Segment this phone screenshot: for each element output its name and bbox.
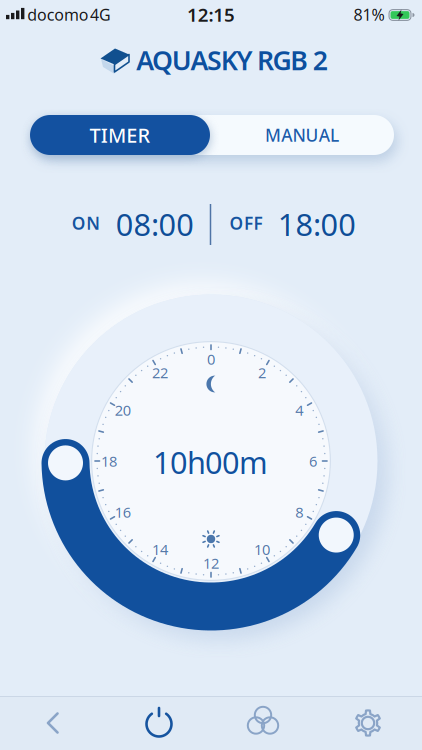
- staticText: 81%: [353, 4, 384, 25]
- staticText: TIMER: [90, 122, 150, 148]
- button[interactable]: MANUAL: [210, 115, 394, 155]
- staticText: 0: [207, 349, 215, 369]
- staticText: 6: [309, 451, 317, 471]
- staticText: 16: [115, 502, 131, 522]
- staticText: 4: [295, 400, 303, 420]
- staticText: 10h00m: [153, 442, 268, 482]
- staticText: 20: [115, 400, 131, 420]
- staticText: OFF: [229, 211, 262, 234]
- staticText: 2: [258, 363, 266, 382]
- button[interactable]: Back: [27, 705, 79, 741]
- staticText: AQUASKY RGB 2: [136, 42, 328, 78]
- button[interactable]: Settings: [342, 703, 394, 743]
- staticText: 10: [254, 540, 270, 559]
- staticText: 08:00: [116, 204, 194, 244]
- button[interactable]: 08:00: [116, 204, 194, 244]
- staticText: 14: [152, 540, 168, 559]
- staticText: 8: [295, 502, 303, 522]
- button[interactable]: Power: [133, 703, 185, 743]
- button[interactable]: 18:00: [278, 204, 356, 244]
- button[interactable]: Color: [237, 702, 289, 742]
- staticText: 18: [101, 451, 117, 471]
- button[interactable]: TIMER: [30, 115, 210, 155]
- staticText: 18:00: [278, 204, 356, 244]
- staticText: MANUAL: [265, 123, 339, 146]
- staticText: 12: [203, 553, 219, 573]
- staticText: 12:15: [187, 2, 235, 27]
- staticText: 22: [152, 363, 168, 382]
- staticText: docomo: [27, 4, 89, 25]
- staticText: 4G: [90, 4, 111, 25]
- staticText: ON: [72, 211, 100, 234]
